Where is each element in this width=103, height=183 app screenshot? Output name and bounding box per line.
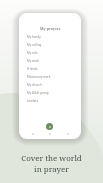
button[interactable]: My role: [19, 49, 81, 57]
staticText: My church: [27, 83, 42, 87]
staticText: Missionary work: [27, 75, 51, 79]
button[interactable]: Nav 0: [29, 130, 37, 138]
staticText: My prayers: [40, 26, 61, 31]
button[interactable]: Add prayer: [46, 123, 53, 130]
button[interactable]: Leaders: [19, 97, 81, 105]
button[interactable]: Nav 1: [46, 130, 54, 138]
staticText: My calling: [27, 43, 42, 47]
button[interactable]: Friends: [19, 65, 81, 73]
button[interactable]: My calling: [19, 41, 81, 49]
staticText: My role: [27, 51, 38, 55]
staticText: My Bible group: [27, 91, 49, 95]
staticText: My family: [27, 35, 41, 39]
button[interactable]: My work: [19, 57, 81, 65]
button[interactable]: My Bible group: [19, 89, 81, 97]
button[interactable]: My family: [19, 33, 81, 41]
staticText: Cover the world: [21, 153, 82, 164]
staticText: Leaders: [27, 99, 39, 103]
button[interactable]: My church: [19, 81, 81, 89]
button[interactable]: Nav 2: [64, 130, 72, 138]
staticText: in prayer: [34, 164, 69, 175]
button[interactable]: Missionary work: [19, 73, 81, 81]
staticText: My work: [27, 59, 40, 63]
staticText: Friends: [27, 67, 38, 71]
